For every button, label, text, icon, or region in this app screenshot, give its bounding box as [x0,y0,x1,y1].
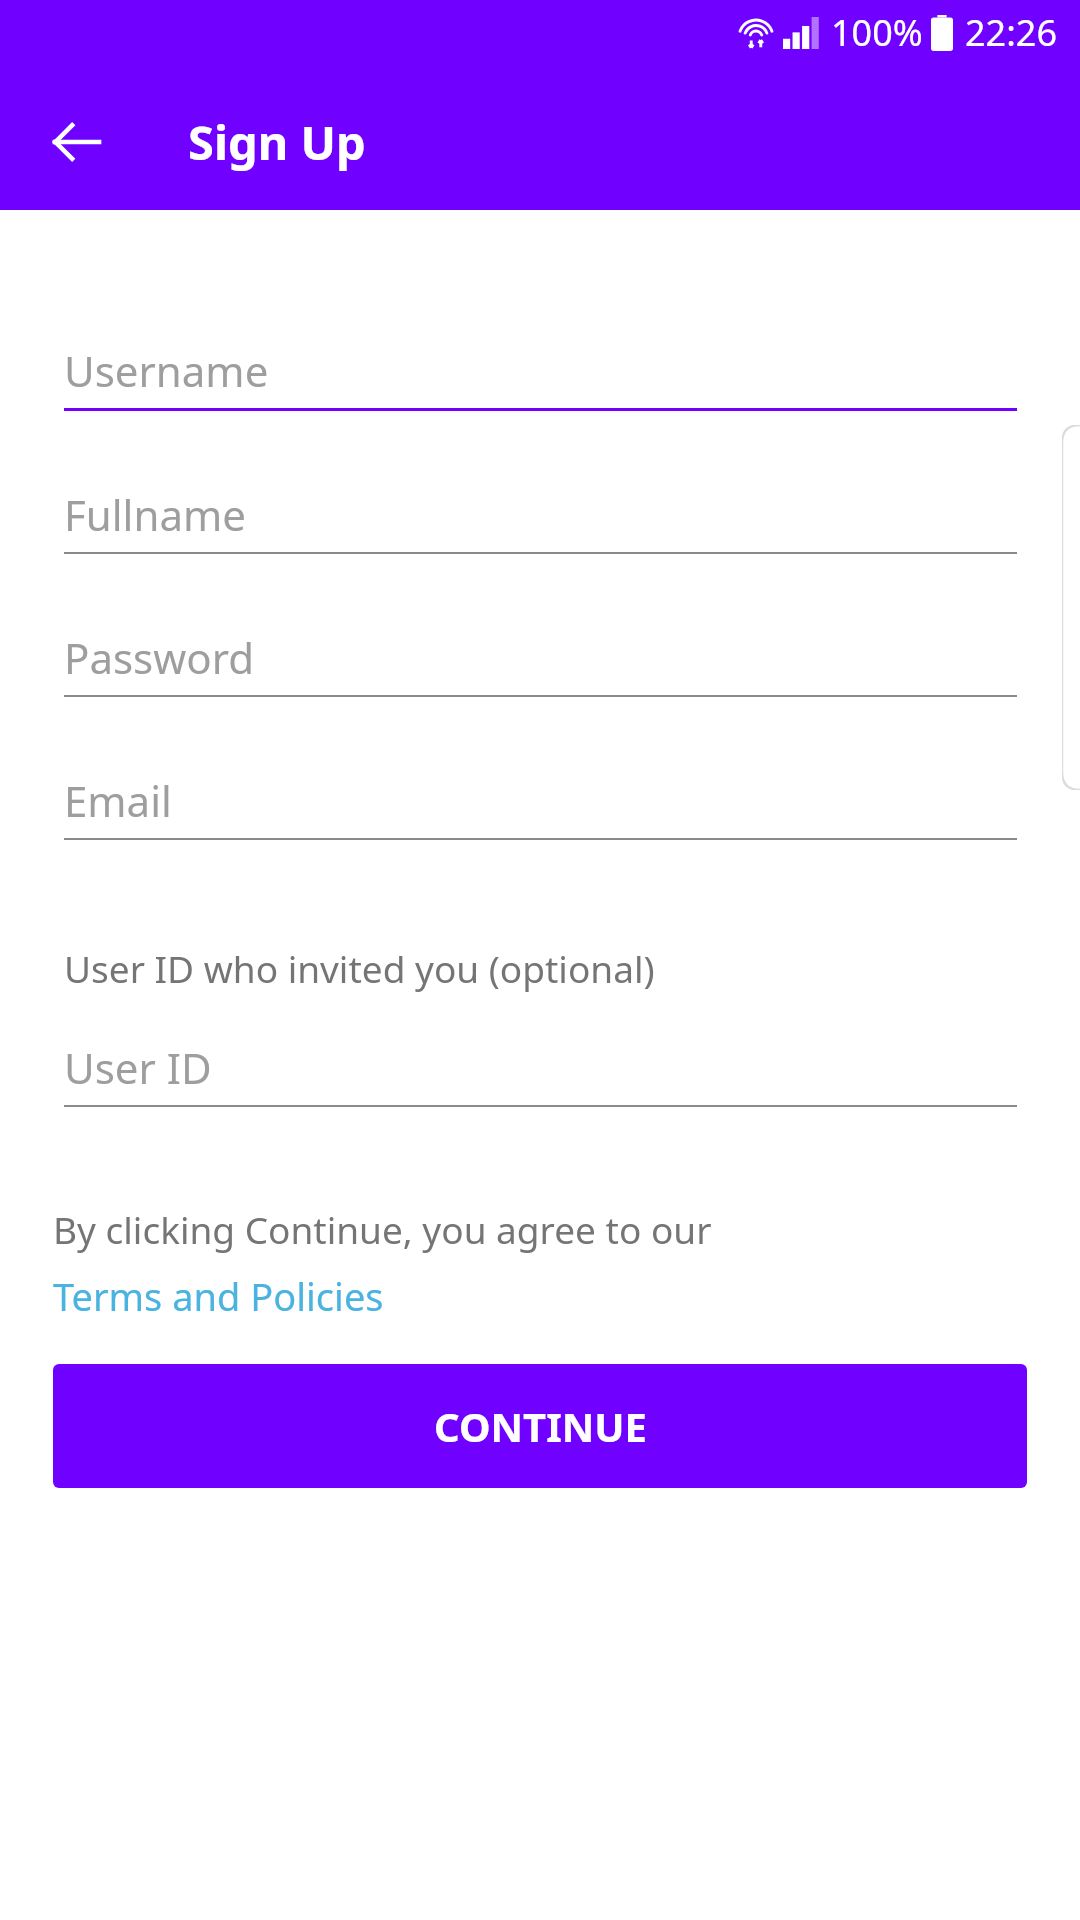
staticText: Fullname [64,486,246,543]
button[interactable]: Back [28,94,124,190]
button[interactable]: Fullname [64,476,1017,554]
button[interactable]: User ID [64,1029,1017,1107]
staticText: Terms and Policies [53,1270,384,1322]
staticText: 22:26 [965,8,1058,57]
button[interactable]: Terms and Policies [53,1270,384,1322]
button[interactable]: Password [64,619,1017,697]
button[interactable]: CONTINUE [53,1364,1027,1488]
staticText: User ID [64,1039,212,1096]
staticText: 100% [831,8,923,57]
staticText: By clicking Continue, you agree to our [53,1204,712,1254]
staticText: CONTINUE [434,1399,647,1453]
staticText: User ID who invited you (optional) [64,943,655,993]
button[interactable]: Username [64,332,1017,411]
staticText: Email [64,772,172,829]
button[interactable]: Email [64,762,1017,840]
staticText: Password [64,629,254,686]
staticText: Sign Up [188,110,366,174]
staticText: Username [64,342,269,399]
